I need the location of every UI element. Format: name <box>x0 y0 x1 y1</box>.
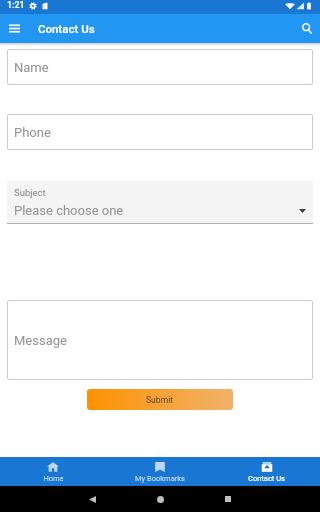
button[interactable]: Home <box>0 457 106 486</box>
staticText: Home <box>43 474 64 483</box>
staticText: Contact Us <box>248 474 285 483</box>
button[interactable]: Search <box>291 14 320 43</box>
button[interactable]: Phone <box>7 114 313 150</box>
button[interactable]: Menu <box>0 14 29 43</box>
button[interactable]: My Bookmarks <box>106 457 213 486</box>
staticText: Please choose one <box>14 203 124 218</box>
button[interactable]: Submit <box>87 389 233 410</box>
button[interactable]: Subject <box>7 181 313 224</box>
button[interactable]: Back <box>80 487 104 511</box>
staticText: Phone <box>14 125 51 140</box>
button[interactable]: Home <box>148 487 172 511</box>
staticText: Submit <box>146 395 174 405</box>
staticText: 1:21 <box>7 0 25 11</box>
staticText: Subject <box>14 187 46 198</box>
staticText: My Bookmarks <box>135 474 185 483</box>
button[interactable]: Recents <box>216 487 240 511</box>
staticText: Name <box>14 60 49 75</box>
staticText: Contact Us <box>38 22 95 35</box>
button[interactable]: Name <box>7 49 313 85</box>
staticText: Message <box>14 333 67 348</box>
button[interactable]: Message <box>7 300 313 380</box>
button[interactable]: Contact Us <box>213 457 320 486</box>
